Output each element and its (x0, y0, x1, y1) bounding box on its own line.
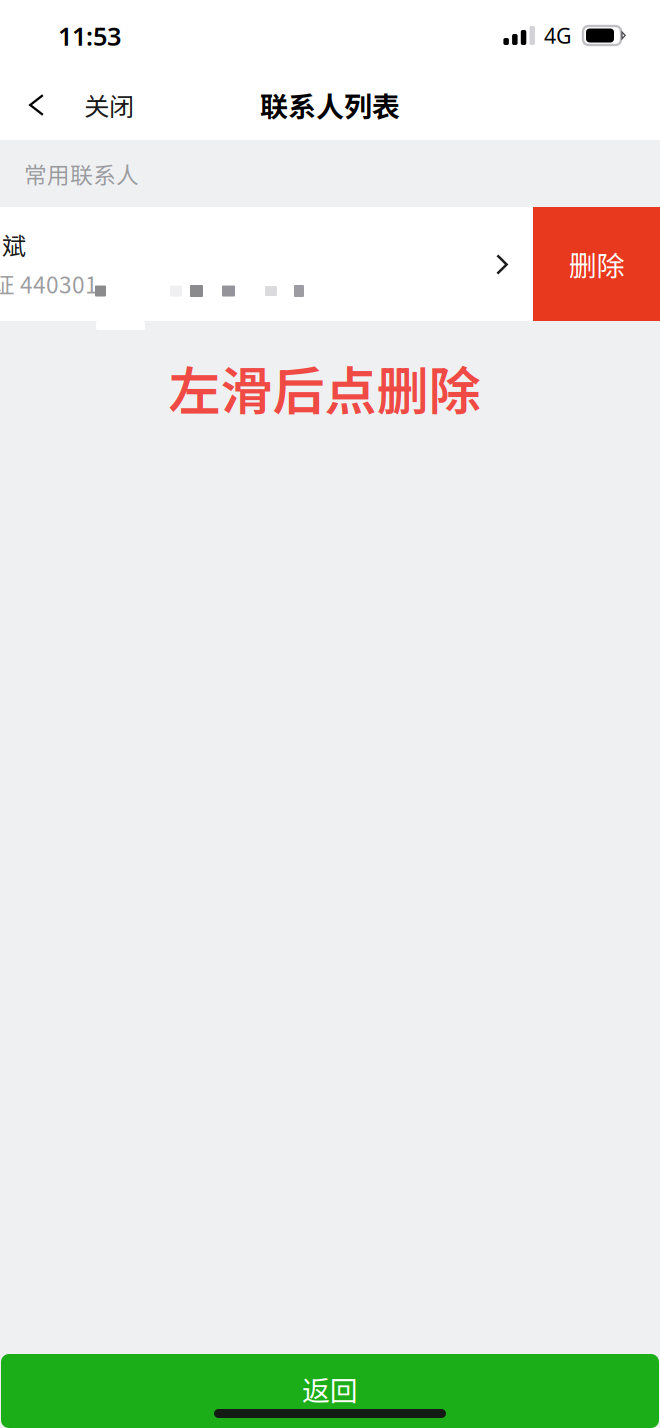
staticText: 删除 (568, 244, 624, 284)
staticText: 返回 (302, 1369, 358, 1409)
staticText: 关闭 (84, 87, 134, 123)
staticText: 4G (544, 21, 572, 50)
staticText: 左滑后点删除 (168, 350, 480, 425)
button[interactable]: 返回 (0, 1354, 660, 1428)
staticText: 证 440301 (0, 267, 98, 300)
staticText: 11:53 (58, 19, 121, 53)
button[interactable]: 斌 (0, 207, 533, 321)
staticText: 斌 (2, 227, 26, 262)
staticText: 联系人列表 (260, 85, 400, 125)
button[interactable]: 删除 (533, 207, 660, 321)
staticText: 常用联系人 (24, 157, 139, 190)
button[interactable]: 关闭 (0, 70, 152, 140)
